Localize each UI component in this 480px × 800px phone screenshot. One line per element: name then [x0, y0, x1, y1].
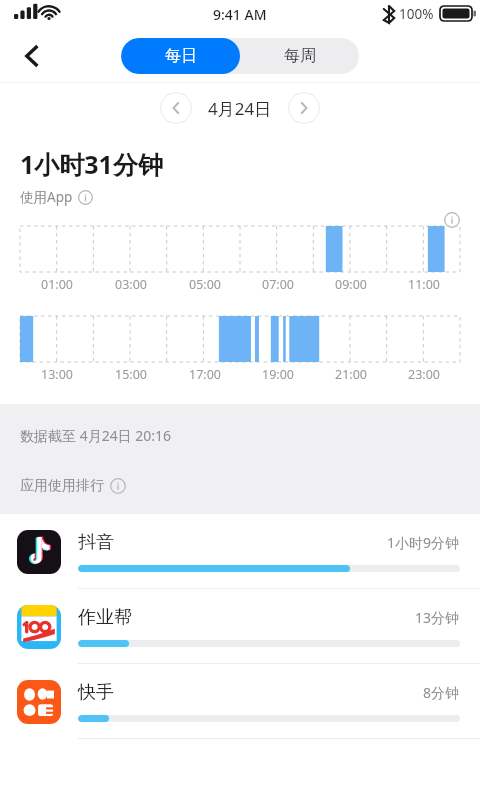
- button[interactable]: Previous day: [160, 92, 192, 124]
- staticText: 01:00: [41, 276, 73, 293]
- staticText: 13:00: [41, 366, 73, 383]
- button[interactable]: Info: [78, 190, 93, 205]
- staticText: 11:00: [408, 276, 440, 293]
- button[interactable]: 快手: [0, 664, 480, 739]
- staticText: 19:00: [262, 366, 294, 383]
- staticText: 数据截至 4月24日 20:16: [20, 426, 172, 445]
- staticText: 快手: [78, 681, 423, 704]
- staticText: 21:00: [335, 366, 367, 383]
- staticText: 作业帮: [78, 606, 415, 629]
- staticText: 抖音: [78, 531, 387, 554]
- staticText: 使用App: [20, 188, 73, 206]
- staticText: 03:00: [115, 276, 147, 293]
- staticText: 每周: [284, 46, 316, 66]
- button[interactable]: Info: [444, 212, 460, 228]
- staticText: 05:00: [189, 276, 221, 293]
- staticText: 15:00: [115, 366, 147, 383]
- button[interactable]: Back: [8, 32, 56, 80]
- staticText: 8分钟: [423, 683, 460, 702]
- button[interactable]: Next day: [288, 92, 320, 124]
- staticText: 9:41 AM: [213, 5, 267, 24]
- button[interactable]: 每周: [240, 38, 359, 74]
- button[interactable]: 每日: [121, 38, 240, 74]
- staticText: 1小时9分钟: [387, 533, 460, 552]
- staticText: 09:00: [335, 276, 367, 293]
- staticText: 07:00: [262, 276, 294, 293]
- staticText: 每日: [165, 46, 197, 66]
- button[interactable]: Info: [110, 478, 126, 494]
- staticText: 4月24日: [208, 97, 272, 120]
- staticText: 17:00: [189, 366, 221, 383]
- staticText: 1小时31分钟: [20, 147, 163, 181]
- staticText: 应用使用排行: [20, 477, 104, 495]
- staticText: 23:00: [408, 366, 440, 383]
- staticText: 100%: [399, 5, 434, 23]
- button[interactable]: 作业帮: [0, 589, 480, 664]
- staticText: 13分钟: [415, 608, 460, 627]
- button[interactable]: 抖音: [0, 514, 480, 589]
